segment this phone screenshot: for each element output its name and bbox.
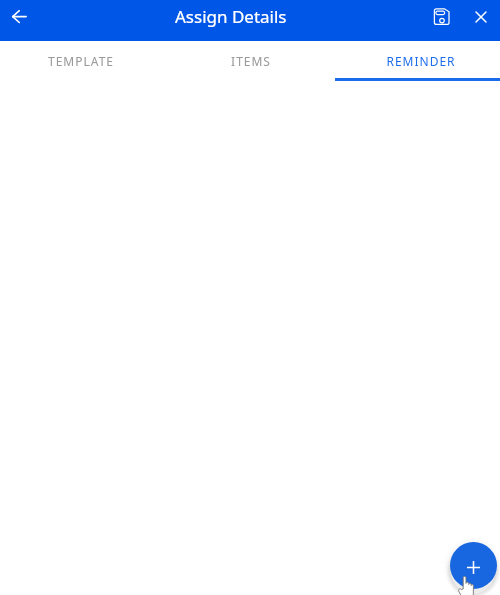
staticText: ITEMS bbox=[231, 53, 271, 69]
staticText: TEMPLATE bbox=[48, 53, 114, 69]
button[interactable]: Save bbox=[424, 0, 462, 34]
button[interactable]: REMINDER bbox=[335, 41, 500, 81]
button[interactable]: Add bbox=[450, 542, 497, 589]
staticText: REMINDER bbox=[386, 53, 456, 69]
staticText: Assign Details bbox=[175, 5, 287, 28]
button[interactable]: Close bbox=[462, 0, 500, 34]
button[interactable]: TEMPLATE bbox=[0, 41, 165, 81]
button[interactable]: Back bbox=[0, 0, 38, 34]
button[interactable]: ITEMS bbox=[165, 41, 335, 81]
